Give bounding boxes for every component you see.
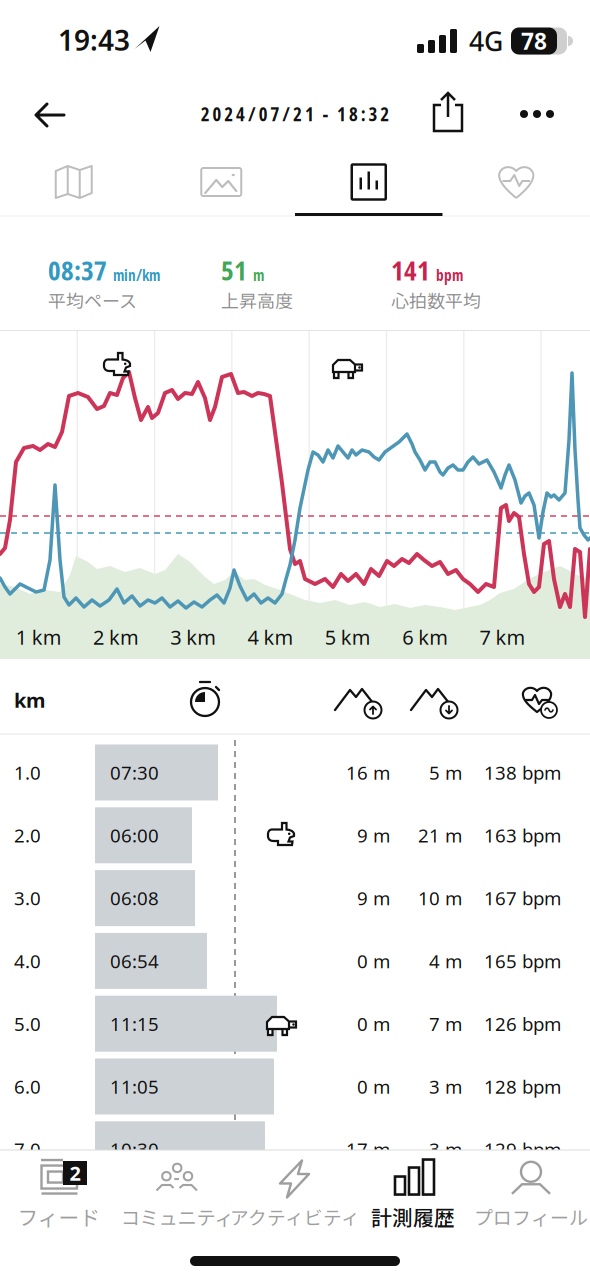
staticText: 167 bpm xyxy=(484,886,561,910)
staticText: m xyxy=(253,265,264,286)
staticText: 7.0 xyxy=(14,1137,41,1162)
staticText: フィード xyxy=(17,1201,100,1231)
button[interactable]: Back xyxy=(28,93,72,137)
staticText: 9 m xyxy=(357,886,390,910)
staticText: 141 xyxy=(391,251,430,289)
staticText: 16 m xyxy=(346,760,390,785)
staticText: 3 m xyxy=(429,1137,462,1162)
staticText: 06:54 xyxy=(110,948,159,973)
staticText: 138 bpm xyxy=(484,760,561,785)
button[interactable]: アクティビティ xyxy=(215,1147,375,1242)
button[interactable]: Photos xyxy=(147,151,295,213)
staticText: 5.0 xyxy=(14,1011,41,1036)
button[interactable]: Heart rate xyxy=(442,151,590,213)
staticText: 165 bpm xyxy=(484,948,561,973)
staticText: bpm xyxy=(436,265,463,286)
staticText: 2 xyxy=(69,1160,80,1186)
staticText: 1 km xyxy=(16,624,62,650)
staticText: 11:15 xyxy=(110,1011,159,1036)
staticText: 19:43 xyxy=(58,21,130,59)
button[interactable]: Map xyxy=(0,151,147,213)
staticText: 06:08 xyxy=(110,886,159,910)
staticText: 4.0 xyxy=(14,948,41,973)
staticText: 10:30 xyxy=(110,1137,159,1162)
staticText: 6.0 xyxy=(14,1074,41,1099)
staticText: 5 m xyxy=(429,760,462,785)
staticText: 上昇高度 xyxy=(221,287,293,313)
staticText: 21 m xyxy=(418,823,462,848)
button[interactable]: Charts xyxy=(295,151,442,213)
staticText: 3 km xyxy=(170,624,216,650)
staticText: 06:00 xyxy=(110,823,159,848)
staticText: 4 m xyxy=(429,948,462,973)
button[interactable]: 計測履歴 xyxy=(333,1147,493,1242)
staticText: 08:37 xyxy=(48,251,107,289)
staticText: プロフィール xyxy=(474,1203,588,1230)
button[interactable]: Share xyxy=(425,89,471,135)
staticText: 0 m xyxy=(357,1011,390,1036)
staticText: min/km xyxy=(113,265,160,286)
staticText: 10 m xyxy=(418,886,462,910)
staticText: 2024/07/21 - 18:32 xyxy=(201,101,389,127)
staticText: 163 bpm xyxy=(484,823,561,848)
staticText: コミュニティ xyxy=(120,1202,233,1230)
staticText: 17 m xyxy=(346,1137,390,1162)
button[interactable]: プロフィール xyxy=(451,1147,590,1242)
staticText: 128 bpm xyxy=(484,1074,561,1099)
staticText: 78 xyxy=(521,26,547,56)
staticText: 心拍数平均 xyxy=(391,287,481,313)
staticText: アクティビティ xyxy=(230,1203,360,1230)
button[interactable]: コミュニティ xyxy=(97,1147,257,1242)
staticText: 11:05 xyxy=(110,1074,159,1099)
staticText: 2.0 xyxy=(14,823,41,848)
staticText: 5 km xyxy=(325,624,371,650)
staticText: 平均ペース xyxy=(48,287,137,313)
staticText: 6 km xyxy=(402,624,448,650)
staticText: 2 km xyxy=(93,624,139,650)
staticText: 計測履歴 xyxy=(371,1201,455,1231)
button[interactable]: フィード xyxy=(0,1147,139,1242)
staticText: 4G xyxy=(469,23,503,59)
staticText: 126 bpm xyxy=(484,1011,561,1036)
staticText: 4 km xyxy=(248,624,294,650)
staticText: 9 m xyxy=(357,823,390,848)
staticText: 07:30 xyxy=(110,760,159,785)
staticText: 0 m xyxy=(357,1074,390,1099)
staticText: 3 m xyxy=(429,1074,462,1099)
staticText: 1.0 xyxy=(14,760,41,785)
staticText: 51 xyxy=(221,251,247,289)
staticText: 129 bpm xyxy=(484,1137,561,1162)
button[interactable]: More xyxy=(518,92,562,136)
staticText: 7 m xyxy=(429,1011,462,1036)
staticText: 7 km xyxy=(479,624,525,650)
staticText: 0 m xyxy=(357,948,390,973)
staticText: 3.0 xyxy=(14,886,41,910)
staticText: km xyxy=(14,687,46,713)
